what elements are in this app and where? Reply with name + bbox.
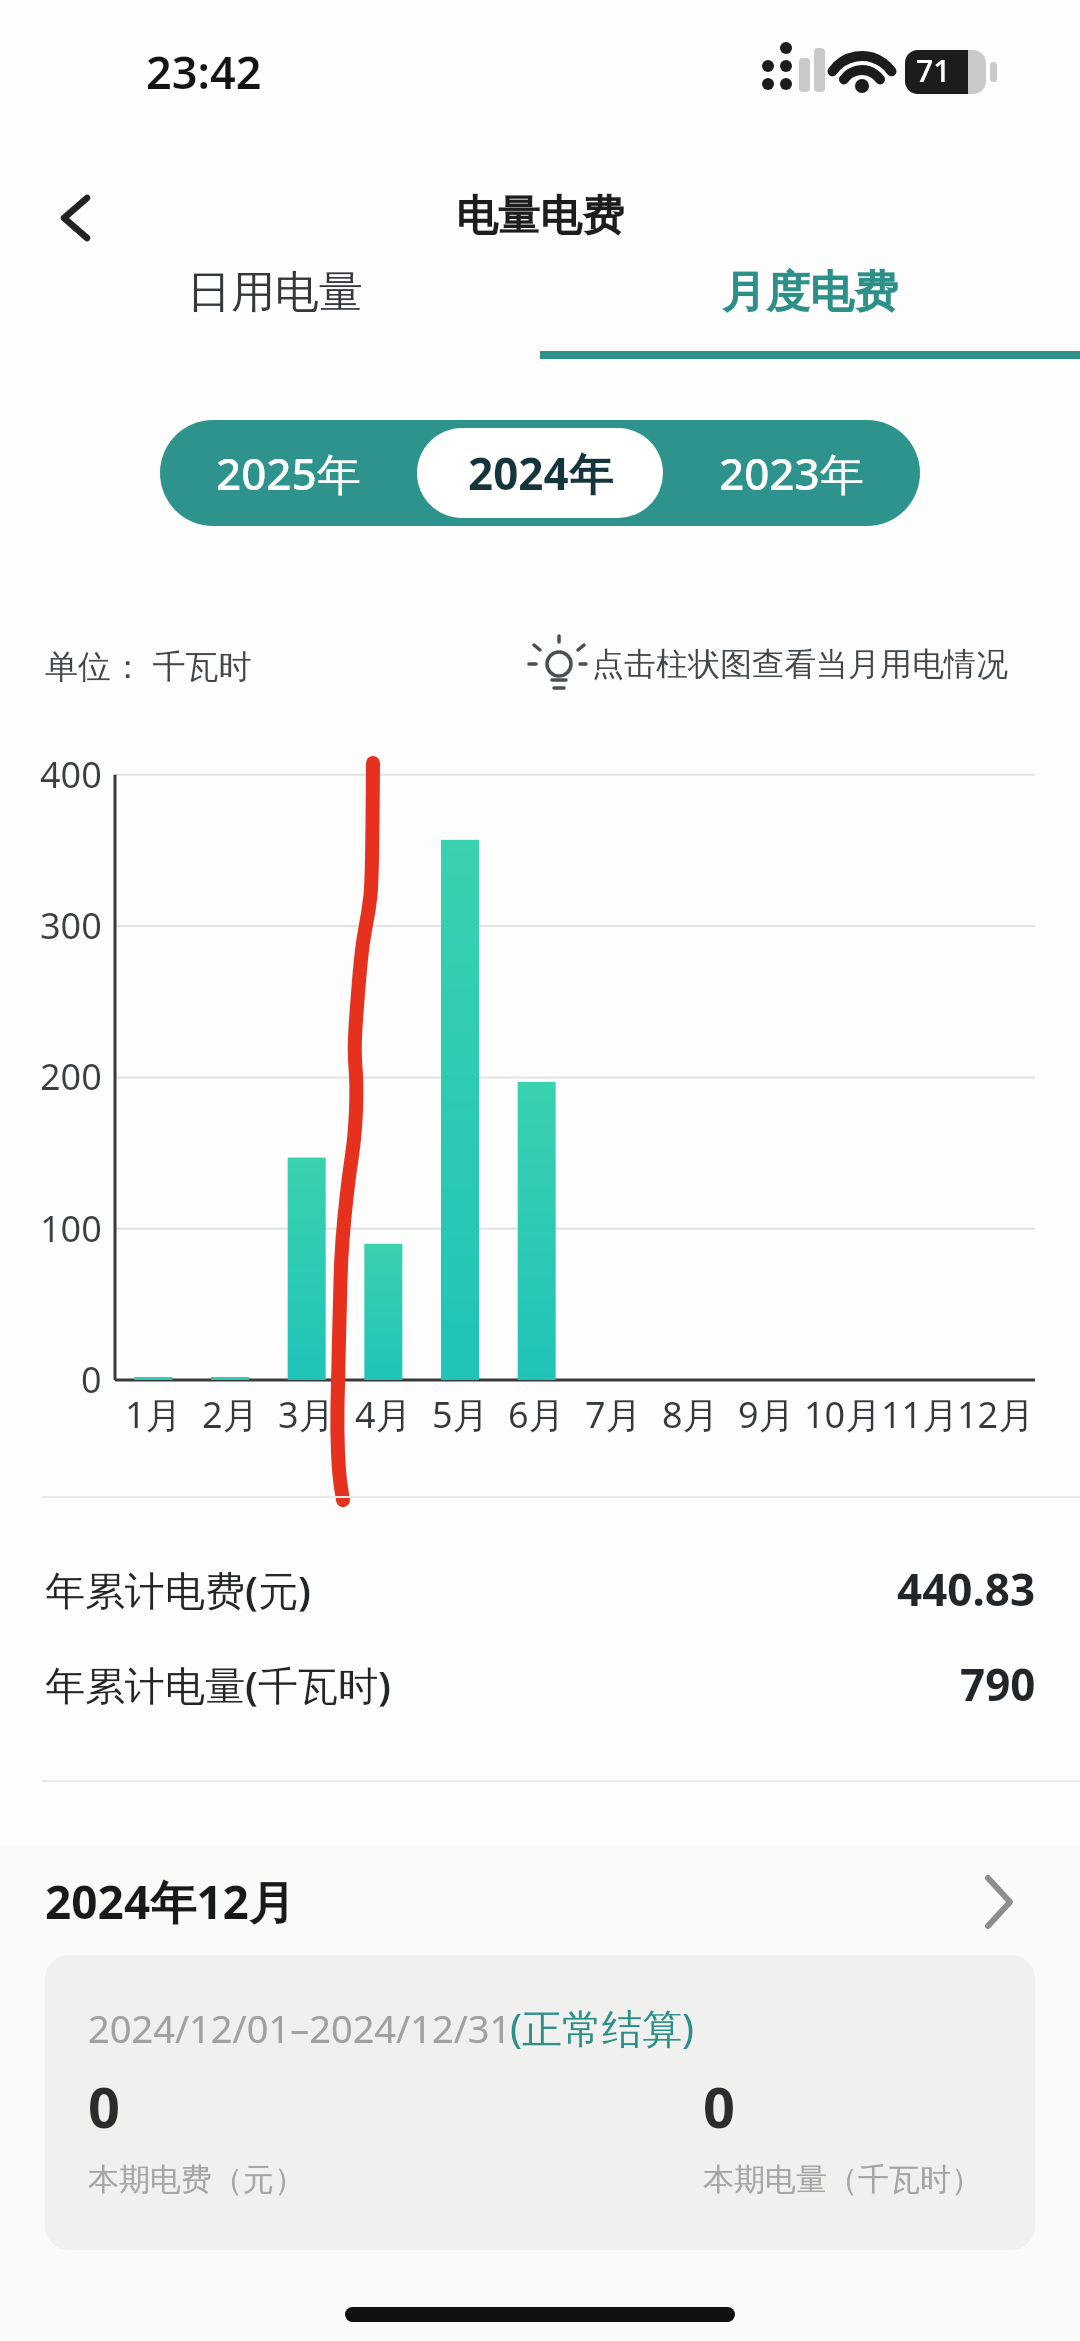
button[interactable]: 2025年 — [160, 443, 417, 503]
staticText: 7月 — [585, 1390, 642, 1439]
staticText: 2024/12/01–2024/12/31 — [88, 2002, 512, 2054]
staticText: 9月 — [738, 1390, 795, 1439]
staticText: 单位： 千瓦时 — [45, 643, 252, 688]
staticText: 12月 — [957, 1390, 1035, 1439]
staticText: 2025年 — [216, 443, 361, 503]
staticText: 200 — [40, 1052, 102, 1101]
staticText: 6月 — [508, 1390, 565, 1439]
staticText: 3月 — [278, 1390, 335, 1439]
staticText: 0 — [88, 2068, 121, 2144]
staticText: 10月 — [804, 1390, 882, 1439]
staticText: (正常结算) — [510, 2000, 694, 2055]
staticText: 2024年12月 — [45, 1870, 295, 1933]
staticText: 电量电费 — [456, 190, 624, 243]
staticText: 23:42 — [146, 41, 262, 102]
button[interactable]: 2024年 — [417, 443, 663, 503]
staticText: 本期电费（元） — [88, 2160, 305, 2199]
staticText: 400 — [40, 750, 102, 799]
button[interactable] — [40, 180, 110, 256]
staticText: 月度电费 — [722, 265, 898, 320]
staticText: 本期电量（千瓦时） — [703, 2160, 982, 2199]
staticText: 440.83 — [897, 1559, 1036, 1619]
button[interactable]: 2023年 — [663, 443, 920, 503]
staticText: 1月 — [125, 1390, 182, 1439]
staticText: 年累计电费(元) — [45, 1562, 311, 1617]
staticText: 2月 — [202, 1390, 259, 1439]
button[interactable]: 月度电费 — [630, 265, 990, 320]
staticText: 11月 — [881, 1390, 959, 1439]
staticText: 0 — [703, 2068, 736, 2144]
staticText: 4月 — [355, 1390, 412, 1439]
staticText: 71 — [916, 50, 951, 91]
staticText: 8月 — [662, 1390, 719, 1439]
staticText: 5月 — [432, 1390, 489, 1439]
staticText: 2023年 — [719, 443, 864, 503]
staticText: 300 — [40, 901, 102, 950]
staticText: 年累计电量(千瓦时) — [45, 1657, 391, 1712]
staticText: 790 — [960, 1654, 1036, 1714]
staticText: 100 — [40, 1204, 102, 1253]
staticText: 点击柱状图查看当月用电情况 — [592, 644, 1008, 684]
button[interactable] — [45, 1955, 1035, 2250]
staticText: 日用电量 — [187, 265, 363, 320]
staticText: 2024年 — [468, 443, 613, 503]
button[interactable]: 日用电量 — [95, 265, 455, 320]
button[interactable] — [0, 1858, 1080, 1948]
staticText: 0 — [81, 1355, 102, 1404]
